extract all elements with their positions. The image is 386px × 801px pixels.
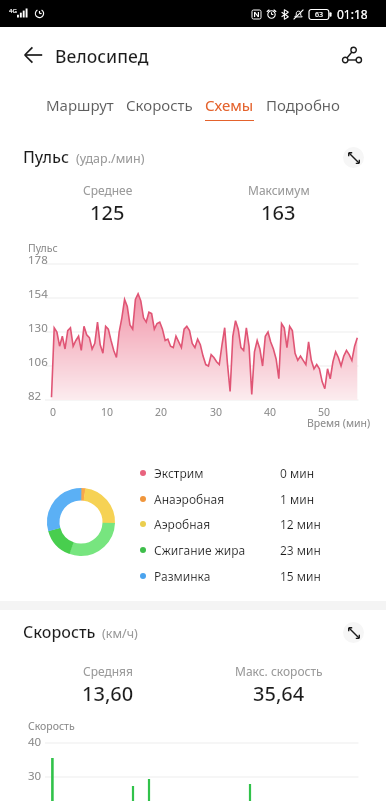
staticText: 1 мин — [280, 491, 315, 507]
staticText: 20 — [155, 405, 168, 419]
staticText: 30 — [210, 405, 223, 419]
staticText: 12 мин — [280, 516, 321, 532]
staticText: Скорость — [28, 719, 75, 733]
button[interactable]: Схемы — [205, 83, 254, 121]
staticText: 130 — [28, 320, 48, 336]
staticText: Маршрут — [46, 95, 114, 115]
staticText: 01:18 — [337, 6, 368, 22]
staticText: Средняя — [83, 663, 133, 679]
staticText: (удар./мин) — [76, 150, 145, 167]
button[interactable]: Expand — [343, 622, 364, 643]
staticText: 23 мин — [280, 542, 321, 558]
staticText: Экстрим — [154, 465, 204, 481]
staticText: Максимум — [248, 182, 310, 198]
staticText: 10 — [101, 405, 114, 419]
staticText: Макс. скорость — [235, 663, 323, 679]
staticText: 4G — [9, 7, 17, 15]
staticText: Пульс — [23, 146, 70, 168]
staticText: Велосипед — [55, 44, 149, 68]
staticText: 125 — [90, 199, 125, 226]
staticText: 50 — [318, 405, 331, 419]
staticText: Скорость — [23, 621, 96, 643]
staticText: 13,60 — [82, 680, 134, 707]
staticText: Пульс — [28, 241, 58, 255]
staticText: Сжигание жира — [154, 542, 246, 558]
staticText: 82 — [28, 388, 42, 404]
staticText: Среднее — [83, 182, 133, 198]
staticText: 30 — [28, 768, 42, 784]
staticText: 106 — [28, 354, 48, 370]
staticText: Аэробная — [154, 516, 211, 532]
button[interactable]: Back — [12, 34, 54, 76]
button[interactable]: Expand — [343, 147, 364, 168]
button[interactable]: Подробно — [266, 83, 340, 121]
staticText: 178 — [28, 252, 48, 268]
staticText: Схемы — [205, 95, 254, 115]
staticText: 40 — [264, 405, 277, 419]
staticText: 63 — [315, 10, 324, 20]
staticText: 0 — [50, 405, 57, 419]
staticText: Скорость — [126, 95, 193, 115]
staticText: 15 мин — [280, 568, 321, 584]
staticText: 163 — [261, 199, 296, 226]
staticText: Время (мин) — [307, 416, 371, 430]
button[interactable]: Скорость — [126, 83, 193, 121]
button[interactable]: Маршрут — [46, 83, 114, 121]
staticText: Подробно — [266, 95, 340, 115]
staticText: 0 мин — [280, 465, 315, 481]
button[interactable]: Share — [331, 34, 373, 76]
staticText: 35,64 — [253, 680, 305, 707]
staticText: (км/ч) — [102, 625, 138, 642]
staticText: 40 — [28, 734, 42, 750]
staticText: Разминка — [154, 568, 211, 584]
staticText: Анаэробная — [154, 491, 225, 507]
staticText: 154 — [28, 286, 48, 302]
